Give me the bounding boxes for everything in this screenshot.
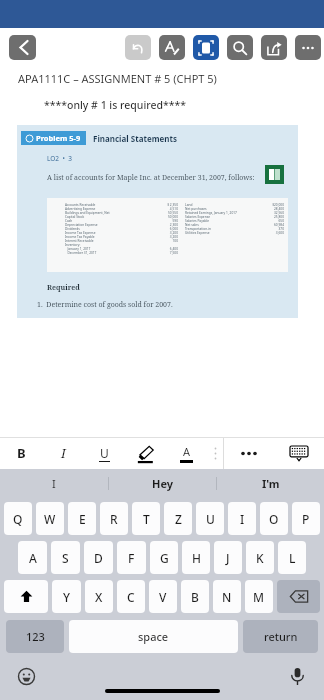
button[interactable]: Share: [261, 35, 287, 60]
staticText: Cash: [65, 219, 172, 223]
staticText: C: [127, 589, 135, 605]
button[interactable]: I'm: [217, 469, 324, 498]
button[interactable]: R: [100, 502, 128, 535]
button[interactable]: Q: [4, 502, 32, 535]
staticText: I: [52, 476, 56, 491]
button[interactable]: Backspace: [277, 580, 320, 613]
staticText: 2,300: [169, 223, 178, 227]
staticText: A: [29, 550, 37, 566]
staticText: I'm: [262, 476, 280, 491]
staticText: Financial Statements: [93, 133, 177, 144]
button[interactable]: Emoji: [18, 668, 35, 685]
button[interactable]: Shift: [4, 580, 48, 613]
staticText: Utilities Expense: [185, 231, 275, 235]
button[interactable]: V: [149, 580, 177, 613]
button[interactable]: D: [84, 541, 113, 574]
staticText: Net sales: [185, 223, 274, 227]
staticText: APA1111C – ASSIGNMENT # 5 (CHPT 5): [18, 71, 217, 86]
button[interactable]: space: [69, 620, 238, 653]
button[interactable]: return: [243, 620, 318, 653]
staticText: Income Tax Expense: [65, 231, 169, 235]
button[interactable]: J: [214, 541, 242, 574]
staticText: I: [240, 511, 245, 527]
button[interactable]: U: [84, 437, 125, 469]
staticText: January 1, 2017: [65, 247, 169, 251]
staticText: E: [79, 511, 86, 527]
button[interactable]: I: [42, 437, 84, 469]
button[interactable]: Back: [9, 35, 36, 60]
button[interactable]: Z: [164, 502, 192, 535]
button[interactable]: B: [0, 437, 42, 469]
button[interactable]: B: [181, 580, 209, 613]
button[interactable]: Highlight: [125, 437, 166, 469]
staticText: R: [110, 511, 118, 527]
staticText: Buildings and Equipment, Net: [65, 211, 168, 215]
staticText: 7,500: [169, 251, 178, 255]
button[interactable]: P: [292, 502, 320, 535]
button[interactable]: Y: [52, 580, 81, 613]
button[interactable]: F: [117, 541, 146, 574]
button[interactable]: S: [51, 541, 80, 574]
staticText: V: [159, 589, 167, 605]
staticText: M: [253, 589, 265, 605]
button[interactable]: X: [85, 580, 113, 613]
staticText: space: [138, 629, 169, 644]
button[interactable]: L: [278, 541, 306, 574]
staticText: 3,200: [169, 231, 178, 235]
staticText: Land: [185, 203, 272, 207]
staticText: G: [160, 550, 169, 566]
button[interactable]: A: [18, 541, 47, 574]
button[interactable]: 123: [6, 620, 64, 653]
button[interactable]: Edit: [159, 35, 185, 60]
staticText: F: [128, 550, 135, 566]
staticText: X: [95, 589, 103, 605]
staticText: Problem 5-9: [36, 133, 81, 143]
staticText: B: [17, 444, 26, 462]
staticText: 590: [172, 219, 178, 223]
button[interactable]: I: [228, 502, 256, 535]
staticText: 25,800: [274, 215, 284, 219]
staticText: Capital Stock: [65, 215, 168, 219]
staticText: A list of accounts for Maple Inc. at Dec…: [47, 173, 255, 183]
staticText: 50,550: [168, 211, 178, 215]
button[interactable]: E: [68, 502, 96, 535]
button[interactable]: N: [213, 580, 241, 613]
button[interactable]: T: [132, 502, 160, 535]
button[interactable]: Problem 5-9: [17, 125, 298, 318]
staticText: Salaries Payable: [185, 219, 278, 223]
button[interactable]: M: [245, 580, 273, 613]
button[interactable]: O: [260, 502, 288, 535]
button[interactable]: C: [117, 580, 145, 613]
staticText: U: [100, 445, 109, 461]
staticText: 50,000: [168, 215, 178, 219]
staticText: 370: [278, 227, 284, 231]
button[interactable]: H: [182, 541, 210, 574]
button[interactable]: I: [0, 469, 108, 498]
staticText: Y: [63, 589, 71, 605]
staticText: J: [226, 550, 230, 566]
button[interactable]: Search: [227, 35, 253, 60]
staticText: Depreciation Expense: [65, 223, 169, 227]
button[interactable]: Undo: [125, 35, 151, 60]
staticText: T: [143, 511, 150, 527]
button[interactable]: W: [36, 502, 64, 535]
staticText: 4,510: [169, 207, 178, 211]
staticText: Income Tax Payable: [65, 235, 169, 239]
button[interactable]: Reflow view: [193, 35, 219, 60]
button[interactable]: Hide keyboard: [274, 437, 324, 469]
staticText: Advertising Expense: [65, 207, 169, 211]
button[interactable]: Voice input: [291, 668, 304, 685]
button[interactable]: More formatting: [224, 437, 274, 469]
staticText: S: [62, 550, 69, 566]
staticText: Q: [13, 511, 23, 527]
button[interactable]: More options: [295, 35, 321, 60]
button[interactable]: K: [246, 541, 274, 574]
button[interactable]: Attachment: [265, 165, 284, 184]
button[interactable]: Hey: [109, 469, 216, 498]
button[interactable]: U: [196, 502, 224, 535]
staticText: $ 2,350: [167, 203, 178, 207]
button[interactable]: G: [150, 541, 178, 574]
staticText: ****only # 1 is required****: [44, 98, 187, 112]
button[interactable]: Font color: [166, 437, 207, 469]
staticText: LO2 • 3: [47, 154, 72, 163]
